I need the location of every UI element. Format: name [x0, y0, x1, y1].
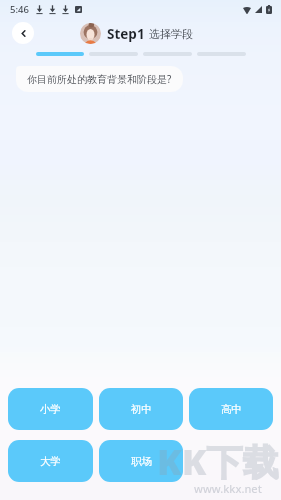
staticText: 选择学段 — [149, 27, 193, 41]
staticText: KK下载 — [157, 437, 279, 486]
staticText: 初中 — [131, 403, 152, 416]
button[interactable]: Back — [12, 22, 34, 44]
staticText: 5:46 — [10, 3, 29, 16]
staticText: 高中 — [221, 403, 242, 416]
staticText: 大学 — [40, 455, 61, 468]
staticText: www.kkx.net — [194, 481, 262, 496]
button[interactable]: 高中 — [189, 388, 273, 430]
button[interactable]: 大学 — [8, 440, 93, 482]
button[interactable]: 初中 — [99, 388, 183, 430]
staticText: 职场 — [131, 455, 152, 468]
staticText: Step1 — [107, 25, 145, 43]
button[interactable]: 小学 — [8, 388, 93, 430]
button[interactable]: 职场 — [99, 440, 183, 482]
staticText: 你目前所处的教育背景和阶段是? — [27, 72, 172, 86]
staticText: 小学 — [40, 403, 61, 416]
